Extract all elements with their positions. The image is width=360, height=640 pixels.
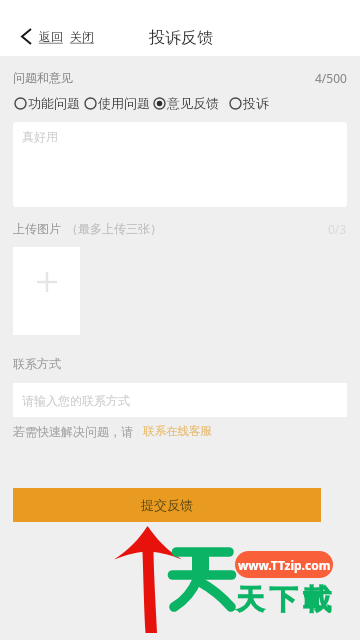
- staticText: 问题和意见: [13, 70, 73, 85]
- staticText: 返回: [39, 29, 63, 44]
- button[interactable]: 意见反馈: [153, 95, 219, 111]
- staticText: 关闭: [70, 29, 94, 44]
- staticText: 天下載: [236, 582, 337, 617]
- staticText: 使用问题: [98, 95, 150, 111]
- staticText: 联系方式: [13, 356, 61, 371]
- staticText: 0/3: [328, 221, 347, 237]
- staticText: www.TTzip.com: [238, 557, 331, 573]
- button[interactable]: 添加图片: [13, 247, 80, 335]
- button[interactable]: 关闭: [70, 20, 94, 52]
- button[interactable]: 请输入您的联系方式: [13, 383, 347, 417]
- staticText: 4/500: [315, 70, 347, 86]
- button[interactable]: 提交反馈: [13, 488, 321, 522]
- staticText: （最多上传三张）: [66, 221, 162, 236]
- button[interactable]: 功能问题: [14, 95, 80, 111]
- staticText: 投诉: [243, 95, 269, 111]
- staticText: 提交反馈: [141, 497, 193, 513]
- staticText: 若需快速解决问题，请: [13, 424, 133, 439]
- staticText: 投诉反馈: [149, 28, 213, 48]
- staticText: 联系在线客服: [143, 424, 212, 438]
- button[interactable]: 使用问题: [84, 95, 150, 111]
- staticText: 功能问题: [28, 95, 80, 111]
- staticText: 请输入您的联系方式: [22, 393, 130, 408]
- staticText: 真好用: [22, 129, 58, 144]
- button[interactable]: 投诉: [229, 95, 269, 111]
- staticText: 意见反馈: [167, 95, 219, 111]
- staticText: 上传图片: [13, 221, 61, 236]
- button[interactable]: 返回: [22, 20, 63, 52]
